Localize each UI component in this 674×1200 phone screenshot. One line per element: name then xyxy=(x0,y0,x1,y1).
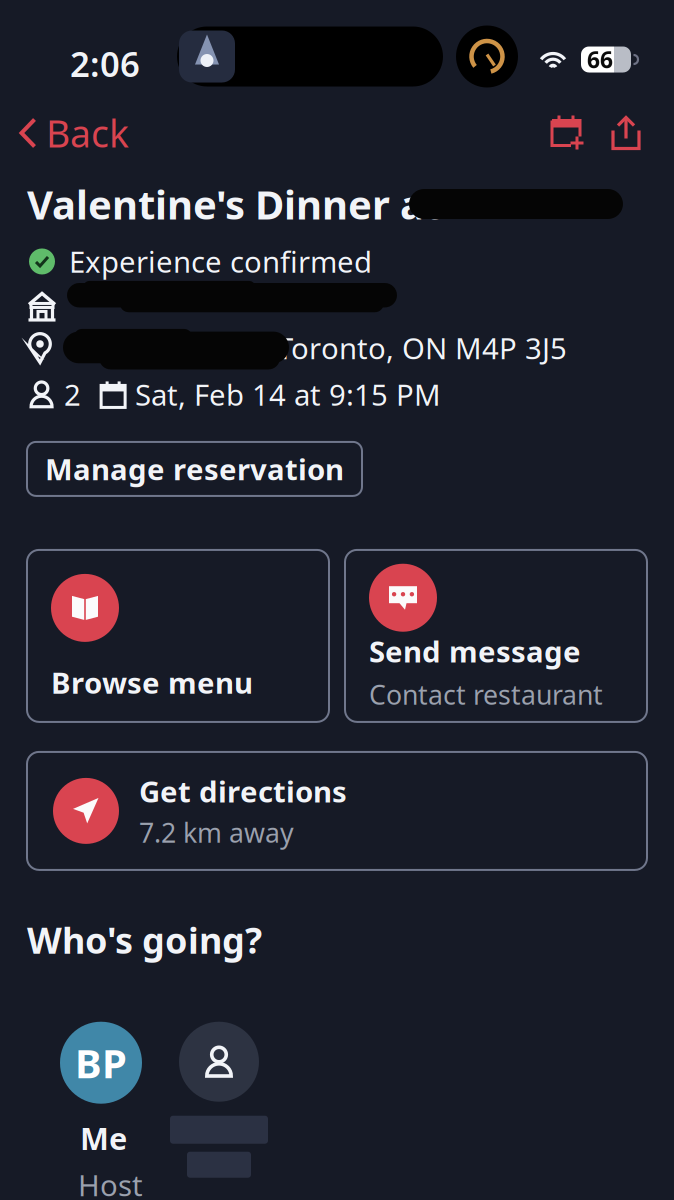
staticText: 2:06 xyxy=(70,40,140,86)
staticText: Get directions xyxy=(139,772,347,811)
staticText: BP xyxy=(75,1036,127,1089)
button[interactable]: Add to calendar xyxy=(538,104,598,161)
button[interactable]: Send message xyxy=(345,550,647,722)
staticText: Sat, Feb 14 at 9:15 PM xyxy=(135,375,441,414)
button[interactable]: Browse menu xyxy=(27,550,329,722)
staticText: Manage reservation xyxy=(45,449,344,488)
staticText: Back xyxy=(46,108,129,158)
staticText: Experience confirmed xyxy=(69,242,372,281)
staticText: Who's going? xyxy=(27,916,262,964)
staticText: Me xyxy=(80,1118,127,1158)
button[interactable]: Share xyxy=(598,105,654,160)
button[interactable]: Get directions xyxy=(27,752,647,870)
staticText: Send message xyxy=(369,632,581,671)
staticText: Contact restaurant xyxy=(369,677,603,712)
staticText: Browse menu xyxy=(51,663,253,702)
staticText: 2 xyxy=(64,375,81,414)
button[interactable]: Manage reservation xyxy=(27,442,362,496)
staticText: Host xyxy=(78,1165,143,1200)
staticText: 7.2 km away xyxy=(139,815,294,850)
staticText: Toronto, ON M4P 3J5 xyxy=(277,328,567,367)
button[interactable]: Back xyxy=(0,102,129,164)
button[interactable]: BP xyxy=(60,1022,142,1200)
staticText: Valentine's Dinner at xyxy=(27,177,441,230)
staticText: 66 xyxy=(587,44,613,74)
